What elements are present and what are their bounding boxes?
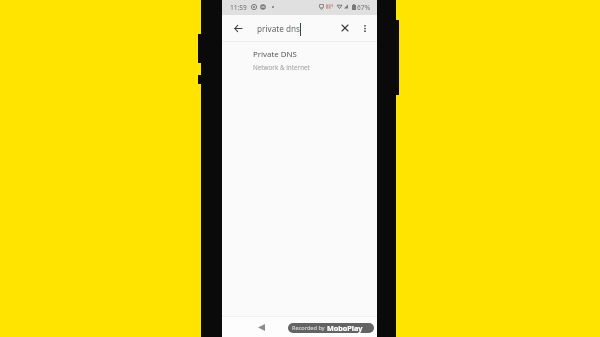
staticText: private dns (257, 23, 301, 34)
staticText: 67% (357, 3, 371, 12)
button[interactable]: Clear search (336, 19, 354, 37)
staticText: Private DNS (253, 49, 297, 60)
button[interactable]: More options (356, 19, 374, 37)
staticText: Network & internet (253, 63, 310, 72)
button[interactable]: Private DNS (222, 42, 377, 78)
button[interactable]: Back (227, 17, 249, 39)
staticText: MoboPlay (327, 323, 363, 333)
staticText: 11:59 (230, 3, 247, 12)
staticText: Recorded by (292, 324, 325, 332)
button[interactable]: Back (252, 318, 270, 336)
